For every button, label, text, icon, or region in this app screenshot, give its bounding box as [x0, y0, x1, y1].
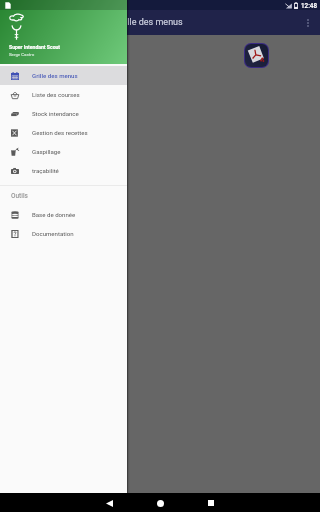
- button[interactable]: Home: [152, 495, 168, 511]
- button[interactable]: Base de donnée: [0, 205, 127, 224]
- staticText: Outils: [11, 192, 28, 200]
- button[interactable]: Back: [101, 495, 117, 511]
- staticText: Stock intendance: [32, 110, 79, 117]
- staticText: Gestion des recettes: [32, 129, 88, 136]
- button[interactable]: Gestion des recettes: [0, 123, 127, 142]
- button[interactable]: PDF document: [245, 44, 268, 67]
- staticText: Grille des menus: [116, 17, 183, 28]
- staticText: Documentation: [32, 230, 74, 237]
- button[interactable]: Gaspillage: [0, 142, 127, 161]
- staticText: Super Intendant Scout: [9, 44, 61, 50]
- staticText: Serge Castro: [9, 52, 35, 57]
- staticText: traçabilité: [32, 167, 59, 174]
- staticText: Base de donnée: [32, 211, 76, 218]
- button[interactable]: Liste des courses: [0, 85, 127, 104]
- staticText: Gaspillage: [32, 148, 61, 155]
- button[interactable]: traçabilité: [0, 161, 127, 180]
- button[interactable]: Stock intendance: [0, 104, 127, 123]
- staticText: Grille des menus: [32, 72, 78, 79]
- button[interactable]: Documentation: [0, 224, 127, 243]
- button[interactable]: Grille des menus: [0, 66, 127, 85]
- staticText: 12:48: [301, 2, 317, 9]
- button[interactable]: More options: [295, 10, 320, 35]
- button[interactable]: Recents: [203, 495, 219, 511]
- staticText: Liste des courses: [32, 91, 80, 98]
